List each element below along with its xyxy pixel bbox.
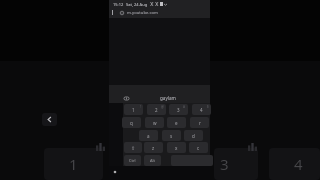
staticText: d bbox=[192, 133, 195, 139]
staticText: 3 bbox=[177, 107, 180, 113]
staticText: m.youtube.com bbox=[127, 10, 158, 16]
staticText: 15:12 bbox=[113, 2, 124, 7]
button[interactable]: z bbox=[144, 142, 163, 153]
staticText: $ bbox=[207, 105, 209, 109]
button[interactable]: Back bbox=[42, 113, 57, 126]
staticText: 4 bbox=[200, 107, 203, 113]
staticText: Sat, 24 Aug bbox=[126, 2, 148, 7]
button[interactable]: c bbox=[189, 142, 208, 153]
staticText: s bbox=[170, 133, 173, 139]
staticText: r bbox=[199, 120, 201, 126]
staticText: # bbox=[183, 105, 186, 109]
staticText: c bbox=[197, 145, 200, 151]
button[interactable]: w bbox=[145, 117, 164, 128]
button[interactable]: x bbox=[167, 142, 186, 153]
staticText: 1 bbox=[69, 154, 78, 174]
staticText: z bbox=[152, 145, 155, 151]
staticText: ! bbox=[140, 105, 141, 109]
button[interactable]: 1 bbox=[124, 104, 143, 115]
staticText: w bbox=[153, 120, 157, 126]
staticText: a bbox=[147, 133, 150, 139]
staticText: @ bbox=[161, 105, 164, 109]
button[interactable]: 1 bbox=[44, 148, 103, 180]
staticText: 3 bbox=[220, 154, 229, 174]
staticText: 4 bbox=[294, 154, 303, 174]
button[interactable]: 4 bbox=[269, 148, 320, 180]
staticText: Ctrl bbox=[129, 158, 136, 163]
button[interactable]: a bbox=[139, 130, 158, 141]
staticText: 2 bbox=[155, 107, 158, 113]
button[interactable]: Alt bbox=[144, 155, 161, 166]
staticText: q bbox=[130, 120, 133, 126]
button[interactable]: d bbox=[184, 130, 203, 141]
button[interactable]: 3 bbox=[169, 104, 188, 115]
button[interactable]: s bbox=[162, 130, 181, 141]
button[interactable]: 2 bbox=[147, 104, 166, 115]
button[interactable]: r bbox=[190, 117, 209, 128]
staticText: e bbox=[175, 120, 178, 126]
button[interactable]: 3 bbox=[214, 148, 258, 180]
button[interactable]: Ctrl bbox=[124, 155, 141, 166]
button[interactable]: ⇧ bbox=[124, 142, 142, 153]
button[interactable]: q bbox=[122, 117, 141, 128]
button[interactable]: 15:12 bbox=[109, 0, 210, 180]
staticText: gaylam bbox=[160, 95, 176, 101]
button[interactable]: e bbox=[167, 117, 186, 128]
staticText: 1 bbox=[132, 107, 135, 113]
button[interactable]: 4 bbox=[192, 104, 211, 115]
staticText: Alt bbox=[150, 158, 156, 163]
staticText: ⇧ bbox=[131, 145, 136, 151]
staticText: x bbox=[175, 145, 178, 151]
